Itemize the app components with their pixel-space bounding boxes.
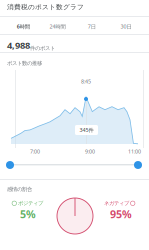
button[interactable]: 24時間	[40, 21, 74, 32]
staticText: 消費税のポスト数グラフ	[7, 3, 84, 11]
staticText: ネガティブ	[104, 200, 129, 207]
staticText: 30日	[120, 23, 131, 30]
staticText: 6時間	[17, 23, 30, 30]
staticText: 11:00	[128, 148, 141, 155]
staticText: 9:00	[85, 148, 95, 155]
staticText: 感情の割合	[7, 186, 32, 193]
staticText: 件のポスト	[30, 45, 55, 51]
staticText: 7日	[88, 23, 96, 30]
staticText: ポジティブ	[18, 200, 43, 207]
staticText: 5%	[20, 207, 36, 221]
staticText: 8:45	[81, 78, 91, 85]
button[interactable]: 30日	[109, 21, 143, 32]
staticText: 7:00	[30, 148, 40, 155]
staticText: 24時間	[49, 23, 65, 30]
staticText: 95%	[110, 207, 132, 221]
button[interactable]: 7日	[74, 21, 109, 32]
staticText: 4,988	[7, 39, 30, 51]
staticText: ポスト数の推移	[7, 60, 42, 67]
button[interactable]: 6時間	[6, 21, 40, 32]
staticText: 345件	[79, 126, 93, 134]
